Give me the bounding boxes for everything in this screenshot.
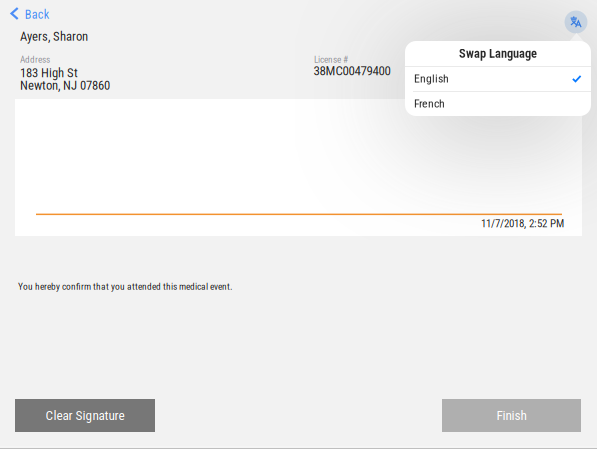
staticText: 38MC00479400 [314,63,391,78]
button[interactable]: Finish [442,399,581,432]
button[interactable]: English [405,66,591,91]
staticText: 11/7/2018, 2:52 PM [481,217,564,230]
staticText: Swap Language [459,46,537,61]
staticText: Clear Signature [45,408,124,423]
staticText: Address [20,54,50,65]
staticText: Back [25,7,50,22]
staticText: Finish [496,408,526,423]
button[interactable]: French [405,91,591,116]
staticText: Ayers, Sharon [20,29,88,44]
button[interactable]: Clear Signature [15,399,155,432]
button[interactable]: Swap Language [564,10,587,33]
staticText: 183 High St [20,66,78,80]
staticText: License # [314,54,348,65]
staticText: French [414,97,445,110]
staticText: You hereby confirm that you attended thi… [18,281,232,292]
staticText: English [414,72,449,85]
button[interactable]: Back [0,0,52,26]
staticText: Newton, NJ 07860 [20,78,110,93]
